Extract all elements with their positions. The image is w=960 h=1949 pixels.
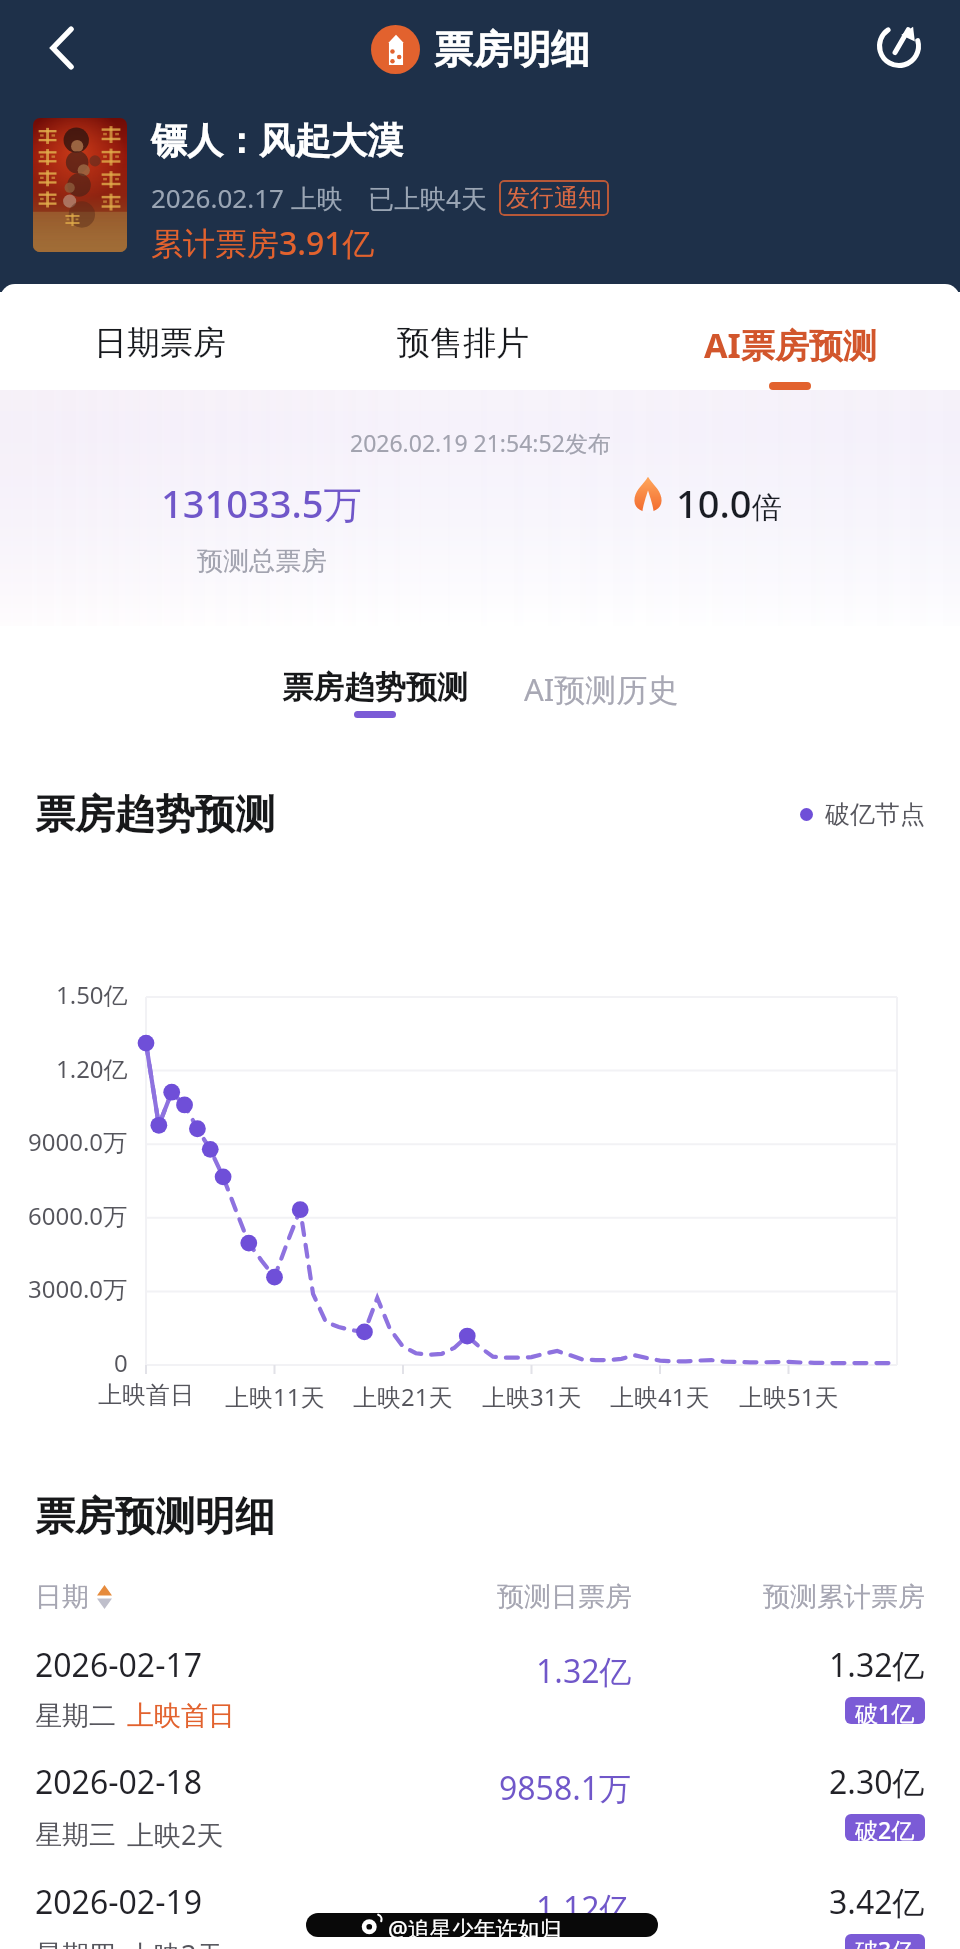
staticText: 破亿节点 bbox=[825, 799, 925, 830]
staticText: 2026.02.17 上映 bbox=[151, 180, 343, 216]
staticText: 1.20亿 bbox=[56, 1052, 128, 1085]
staticText: 上映31天 bbox=[482, 1380, 582, 1413]
staticText: 倍 bbox=[752, 489, 782, 527]
button[interactable]: 预售排片 bbox=[313, 284, 613, 390]
button[interactable]: 2026-02-17 bbox=[35, 1643, 925, 1733]
button[interactable]: Refresh bbox=[872, 19, 928, 75]
staticText: 6000.0万 bbox=[28, 1199, 128, 1232]
staticText: 累计票房3.91亿 bbox=[151, 221, 375, 265]
staticText: 9000.0万 bbox=[28, 1125, 128, 1158]
staticText: 2026.02.19 21:54:52发布 bbox=[350, 427, 611, 458]
staticText: 2.30亿 bbox=[829, 1760, 925, 1804]
staticText: 2026-02-17 bbox=[35, 1643, 203, 1687]
staticText: 日期票房 bbox=[94, 322, 226, 364]
staticText: 9858.1万 bbox=[499, 1766, 632, 1810]
staticText: 预测总票房 bbox=[197, 545, 327, 578]
staticText: 日期 bbox=[35, 1580, 89, 1614]
staticText: 上映21天 bbox=[353, 1380, 453, 1413]
staticText: 已上映4天 bbox=[368, 180, 487, 216]
staticText: 票房趋势预测 bbox=[282, 668, 468, 707]
staticText: 预测累计票房 bbox=[763, 1580, 925, 1614]
staticText: 破2亿 bbox=[855, 1814, 915, 1841]
staticText: 票房明细 bbox=[434, 25, 590, 74]
staticText: 预测日票房 bbox=[497, 1580, 632, 1614]
button[interactable]: 发行通知 bbox=[506, 183, 602, 213]
staticText: 3.42亿 bbox=[829, 1880, 925, 1924]
button[interactable]: Sort by date bbox=[97, 1584, 112, 1610]
staticText: AI票房预测 bbox=[704, 322, 877, 368]
staticText: 星期二 bbox=[35, 1699, 116, 1733]
staticText: 破1亿 bbox=[855, 1697, 915, 1724]
staticText: 票房趋势预测 bbox=[35, 789, 275, 839]
staticText: 2026-02-19 bbox=[35, 1880, 203, 1924]
button[interactable]: 2026-02-19 bbox=[35, 1880, 925, 1949]
staticText: 3000.0万 bbox=[28, 1272, 128, 1305]
button[interactable]: 票房趋势预测 bbox=[282, 668, 468, 718]
staticText: 上映3天 bbox=[127, 1936, 224, 1949]
staticText: 1.12亿 bbox=[536, 1886, 632, 1930]
staticText: 2026-02-18 bbox=[35, 1760, 203, 1804]
button[interactable]: Back bbox=[24, 10, 100, 86]
staticText: 星期三 bbox=[35, 1818, 116, 1852]
button[interactable]: 2026-02-18 bbox=[35, 1760, 925, 1853]
staticText: 破3亿 bbox=[855, 1934, 915, 1949]
button[interactable]: AI预测历史 bbox=[524, 668, 679, 710]
staticText: 10.0 bbox=[676, 477, 752, 529]
staticText: 1.32亿 bbox=[829, 1643, 925, 1687]
staticText: 上映首日 bbox=[127, 1699, 235, 1733]
staticText: 上映首日 bbox=[98, 1380, 194, 1410]
staticText: AI预测历史 bbox=[524, 668, 679, 710]
button[interactable]: AI票房预测 bbox=[640, 284, 940, 390]
staticText: 星期四 bbox=[35, 1938, 116, 1949]
staticText: 预售排片 bbox=[397, 322, 529, 364]
button[interactable]: 票房明细 bbox=[371, 25, 590, 74]
button[interactable]: 日期票房 bbox=[10, 284, 310, 390]
staticText: 1.32亿 bbox=[536, 1649, 632, 1693]
staticText: 票房预测明细 bbox=[35, 1491, 275, 1541]
staticText: 上映51天 bbox=[739, 1380, 839, 1413]
staticText: 上映11天 bbox=[225, 1380, 325, 1413]
staticText: @追星少年许如归 bbox=[388, 1913, 562, 1937]
staticText: 1.50亿 bbox=[56, 978, 128, 1011]
staticText: 上映41天 bbox=[610, 1380, 710, 1413]
staticText: 131033.5万 bbox=[161, 477, 362, 529]
staticText: 上映2天 bbox=[127, 1816, 224, 1853]
staticText: 0 bbox=[114, 1346, 128, 1379]
staticText: 发行通知 bbox=[506, 183, 602, 213]
staticText: 镖人：风起大漠 bbox=[151, 118, 403, 163]
